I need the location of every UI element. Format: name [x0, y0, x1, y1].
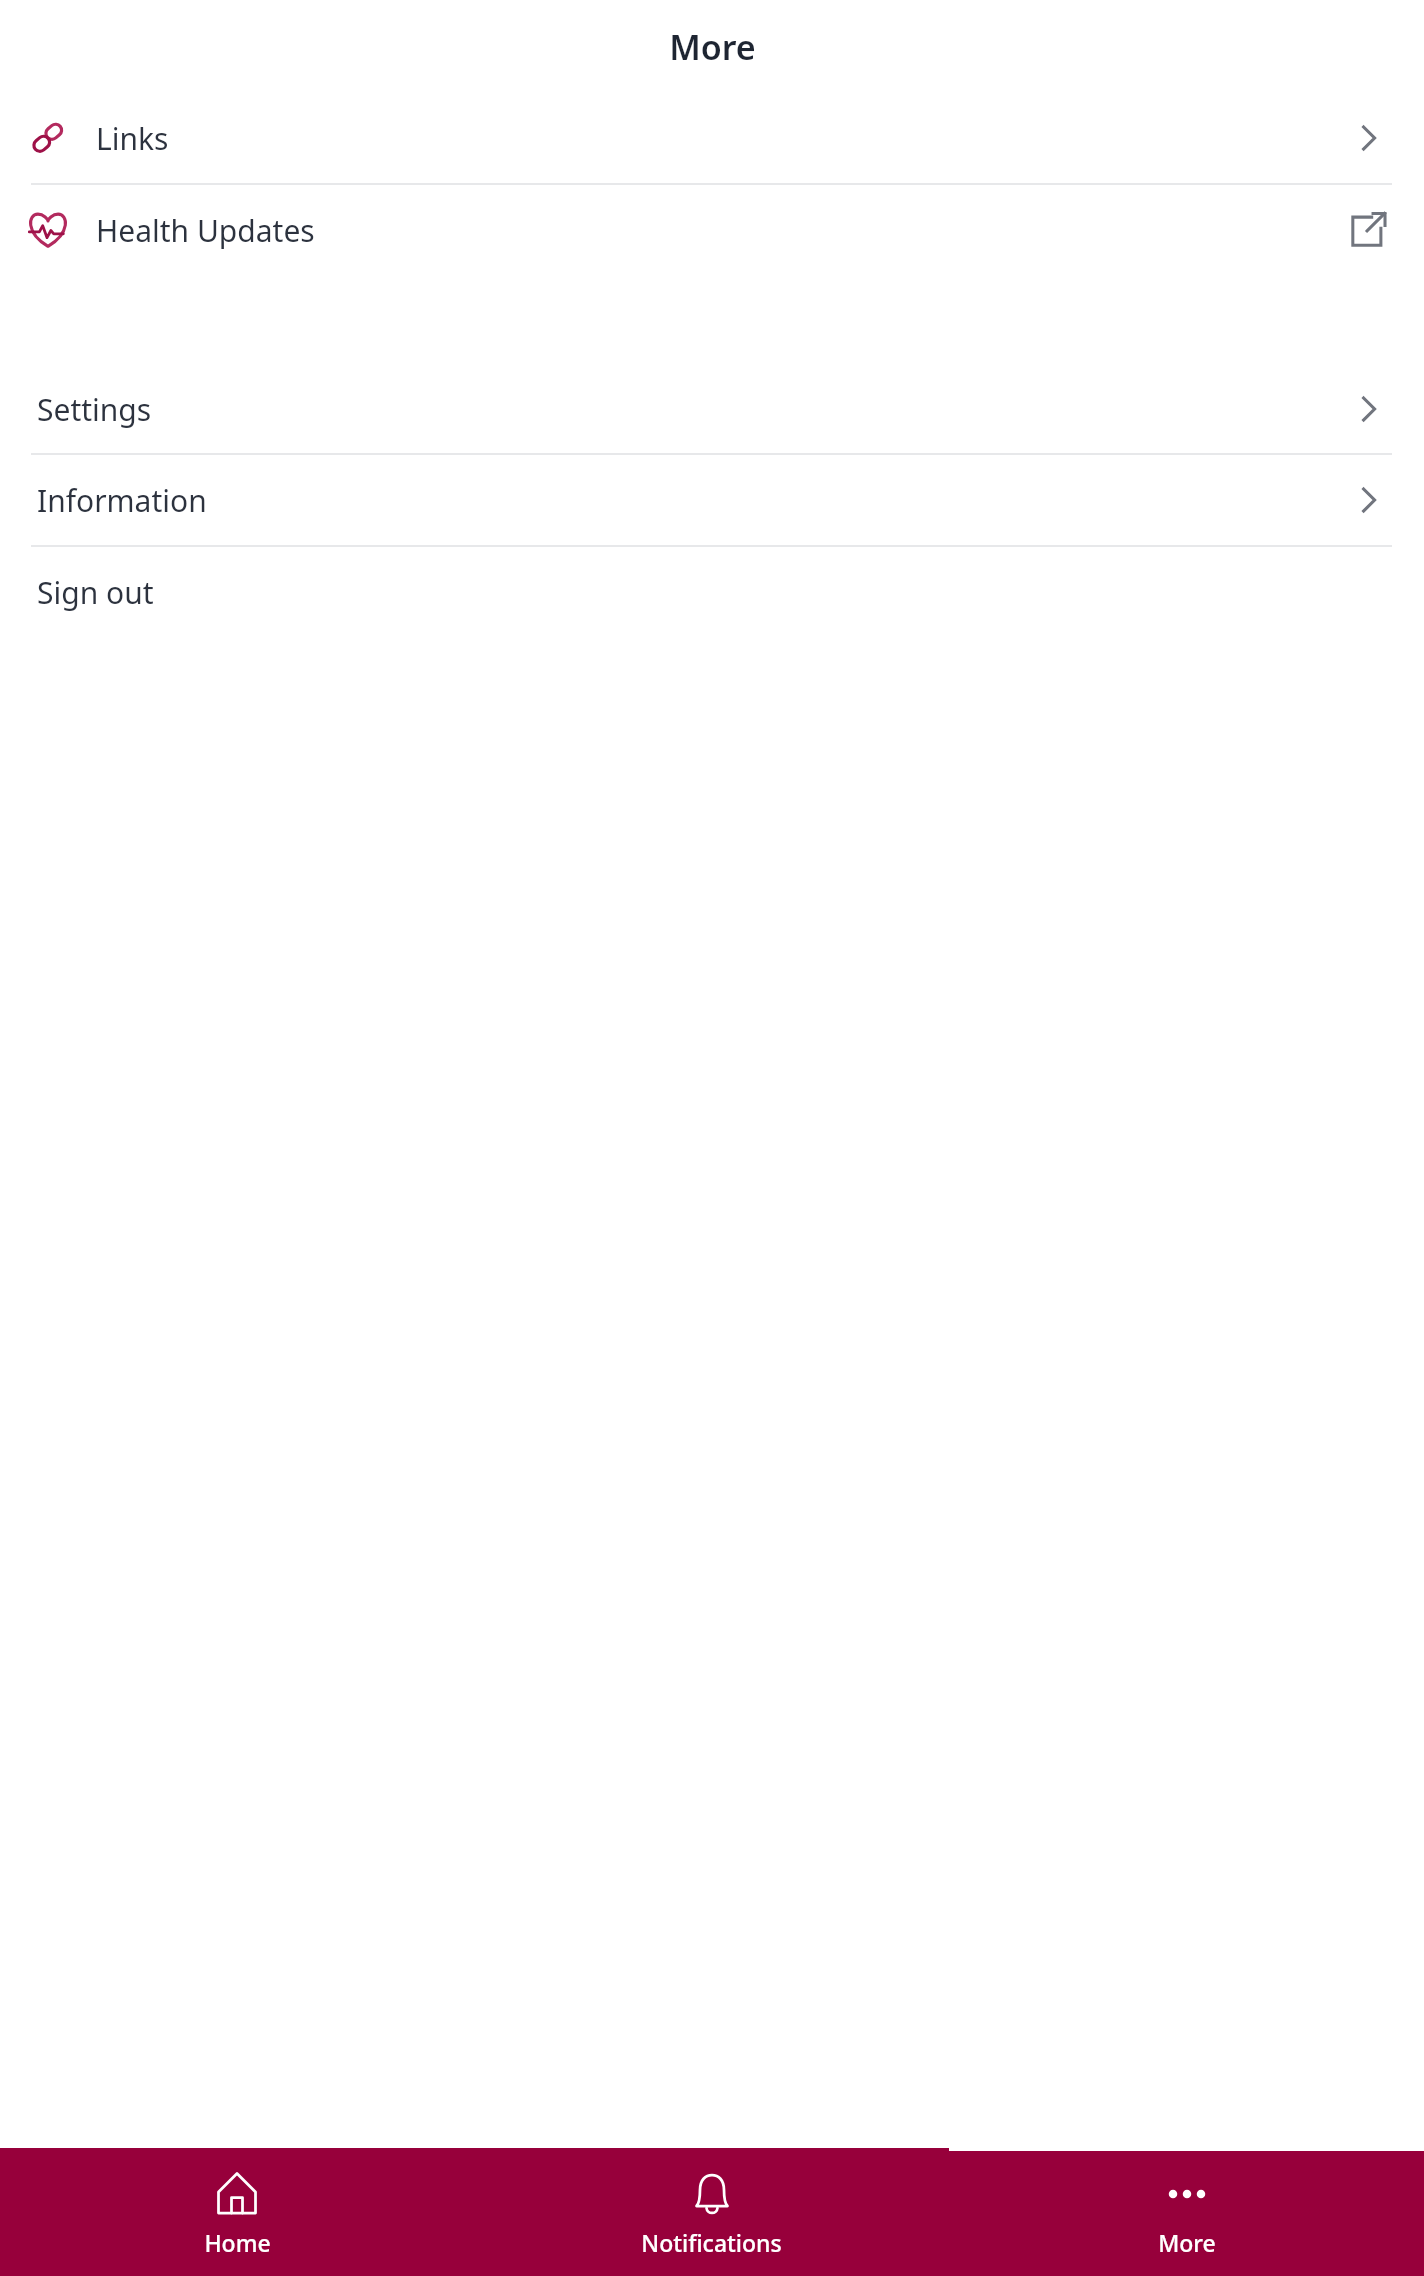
- other: Open Settings: [1344, 385, 1392, 433]
- button[interactable]: Settings: [0, 365, 1424, 453]
- staticText: Home: [204, 2227, 271, 2258]
- button[interactable]: More: [949, 2147, 1424, 2276]
- staticText: Health Updates: [96, 210, 315, 251]
- staticText: More: [1158, 2227, 1216, 2258]
- other: Open Links: [1344, 114, 1392, 162]
- button[interactable]: Home: [0, 2147, 474, 2276]
- staticText: Information: [37, 480, 207, 521]
- other: Open Health Updates externally: [1344, 206, 1392, 254]
- other: Open Information: [1344, 476, 1392, 524]
- button[interactable]: Information: [0, 455, 1424, 545]
- staticText: Settings: [37, 389, 152, 430]
- staticText: Notifications: [641, 2227, 782, 2258]
- staticText: More: [669, 24, 756, 70]
- button[interactable]: Health Updates: [0, 185, 1424, 275]
- staticText: Sign out: [37, 572, 154, 613]
- staticText: Links: [96, 118, 169, 159]
- button[interactable]: Notifications: [474, 2147, 949, 2276]
- button[interactable]: Links: [0, 93, 1424, 183]
- button[interactable]: Sign out: [0, 547, 1424, 637]
